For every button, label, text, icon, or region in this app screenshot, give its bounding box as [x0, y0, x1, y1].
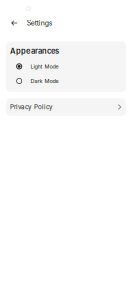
staticText: Appearances [10, 46, 59, 55]
button[interactable]: Dark Mode [6, 74, 126, 88]
staticText: Privacy Policy [10, 103, 53, 111]
button[interactable]: Light Mode [6, 59, 126, 74]
button[interactable]: Privacy Policy [6, 98, 126, 116]
button[interactable]: Back [6, 17, 23, 29]
staticText: Dark Mode [30, 78, 58, 84]
staticText: Light Mode [30, 63, 58, 70]
staticText: Settings [27, 19, 53, 27]
